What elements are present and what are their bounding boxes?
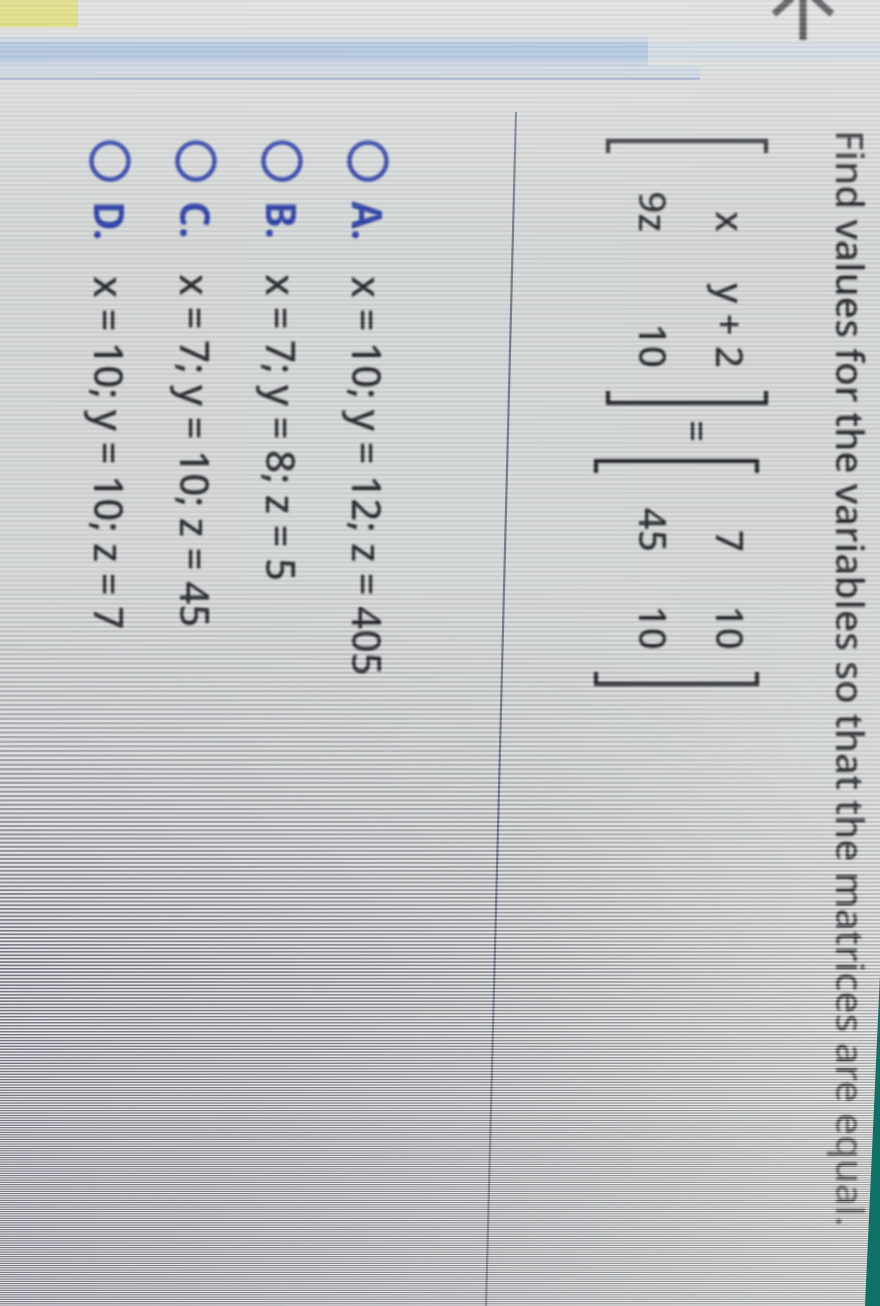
staticText: y + 2 [0,68,757,368]
staticText: x = 7; y = 10; z = 45 [168,274,223,628]
button[interactable]: B. [254,139,310,919]
staticText: 45 [0,252,680,552]
staticText: 10 [0,350,680,650]
staticText: A. [340,201,395,241]
staticText: 9z [0,0,680,232]
staticText: x = 10; y = 12; z = 405 [340,276,395,676]
button[interactable]: A. [340,139,396,919]
staticText: x = 10; y = 10; z = 7 [82,276,137,630]
staticText: = [671,420,724,443]
button[interactable]: D. [82,139,138,919]
staticText: D. [82,201,137,241]
staticText: x = 7; y = 8; z = 5 [254,274,309,582]
staticText: 10 [0,68,680,368]
staticText: 10 [0,350,757,650]
staticText: Find values for the variables so that th… [824,130,877,1227]
staticText: B. [254,201,309,239]
staticText: x [0,0,757,232]
staticText: 7 [0,252,757,552]
staticText: C. [168,201,223,239]
button[interactable]: C. [168,139,224,919]
button[interactable]: Back [771,0,833,44]
